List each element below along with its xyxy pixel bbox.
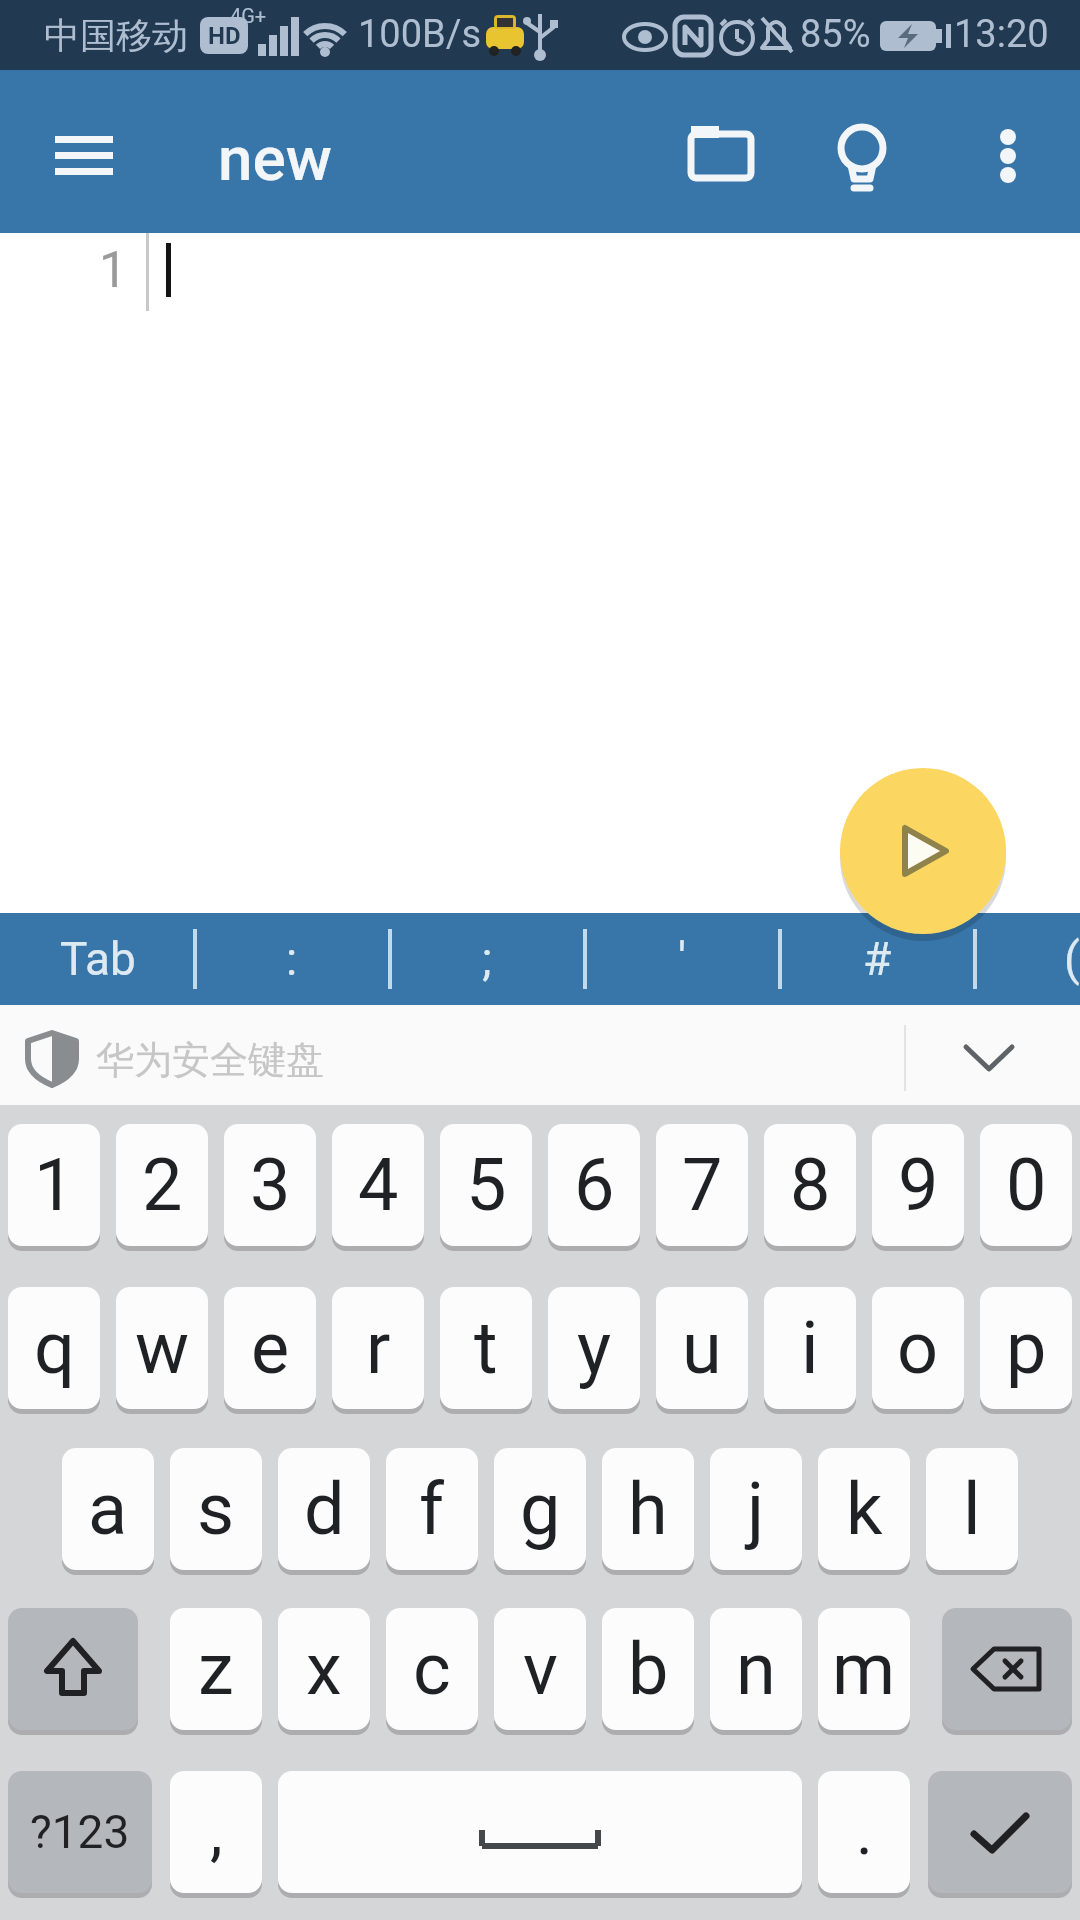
staticText: a (88, 1467, 128, 1551)
staticText: 华为安全键盘 (96, 1036, 324, 1084)
button[interactable]: 4 (332, 1124, 424, 1246)
button[interactable]: c (386, 1608, 478, 1730)
button[interactable]: x (278, 1608, 370, 1730)
button[interactable] (972, 116, 1044, 192)
button[interactable]: z (170, 1608, 262, 1730)
staticText: ' (678, 932, 687, 986)
button[interactable]: p (980, 1287, 1072, 1409)
staticText: ; (482, 932, 492, 986)
button[interactable]: t (440, 1287, 532, 1409)
staticText: c (413, 1627, 451, 1711)
staticText: f (419, 1467, 445, 1551)
button[interactable]: d (278, 1448, 370, 1570)
button[interactable] (43, 124, 125, 186)
button[interactable]: r (332, 1287, 424, 1409)
button[interactable]: w (116, 1287, 208, 1409)
button[interactable]: v (494, 1608, 586, 1730)
staticText: : (286, 932, 298, 986)
button[interactable]: a (62, 1448, 154, 1570)
button[interactable]: y (548, 1287, 640, 1409)
staticText: q (34, 1306, 75, 1390)
button[interactable]: u (656, 1287, 748, 1409)
button[interactable] (8, 1608, 138, 1730)
staticText: 1 (34, 1143, 75, 1227)
staticText: n (736, 1627, 776, 1711)
button[interactable]: ; (389, 913, 585, 1005)
button[interactable]: ( (974, 913, 1080, 1005)
button[interactable]: 3 (224, 1124, 316, 1246)
staticText: 9 (898, 1143, 939, 1227)
button[interactable]: 7 (656, 1124, 748, 1246)
button[interactable]: # (779, 913, 975, 1005)
button[interactable] (824, 116, 900, 192)
staticText: h (628, 1467, 668, 1551)
staticText: 1 (98, 241, 128, 300)
button[interactable]: q (8, 1287, 100, 1409)
button[interactable] (928, 1771, 1072, 1893)
button[interactable]: 5 (440, 1124, 532, 1246)
staticText: v (523, 1627, 558, 1711)
button[interactable]: Tab (0, 913, 196, 1005)
button[interactable]: , (170, 1771, 262, 1893)
staticText: y (577, 1306, 612, 1390)
staticText: ( (1064, 932, 1080, 986)
button[interactable]: g (494, 1448, 586, 1570)
staticText: HD (208, 22, 241, 50)
button[interactable]: f (386, 1448, 478, 1570)
staticText: l (963, 1467, 981, 1551)
button[interactable]: 6 (548, 1124, 640, 1246)
staticText: 6 (574, 1143, 615, 1227)
button[interactable]: 0 (980, 1124, 1072, 1246)
button[interactable]: n (710, 1608, 802, 1730)
staticText: r (366, 1306, 391, 1390)
button[interactable] (678, 118, 762, 190)
staticText: , (210, 1795, 223, 1870)
button[interactable] (840, 768, 1006, 934)
staticText: 0 (1006, 1143, 1047, 1227)
button[interactable]: ' (584, 913, 780, 1005)
button[interactable]: 1 (8, 1124, 100, 1246)
button[interactable] (20, 1023, 340, 1093)
button[interactable]: e (224, 1287, 316, 1409)
button[interactable] (918, 1013, 1068, 1101)
staticText: o (897, 1306, 939, 1390)
staticText: 85% (800, 12, 871, 57)
staticText: 5 (466, 1143, 507, 1227)
staticText: s (197, 1467, 235, 1551)
button[interactable] (942, 1608, 1072, 1730)
staticText: # (863, 932, 892, 986)
button[interactable]: s (170, 1448, 262, 1570)
button[interactable]: o (872, 1287, 964, 1409)
button[interactable]: 8 (764, 1124, 856, 1246)
staticText: 13:20 (954, 12, 1049, 57)
staticText: x (306, 1627, 342, 1711)
staticText: 2 (142, 1143, 183, 1227)
staticText: j (747, 1467, 765, 1551)
button[interactable]: h (602, 1448, 694, 1570)
staticText: 中国移动 (44, 13, 188, 58)
button[interactable]: i (764, 1287, 856, 1409)
staticText: 3 (250, 1143, 291, 1227)
staticText: t (474, 1306, 498, 1390)
staticText: p (1006, 1306, 1047, 1390)
staticText: 100B/s (358, 12, 482, 57)
staticText: new (218, 122, 332, 195)
button[interactable]: . (818, 1771, 910, 1893)
staticText: m (832, 1627, 896, 1711)
button[interactable]: ?123 (8, 1771, 152, 1893)
button[interactable]: l (926, 1448, 1018, 1570)
staticText: e (251, 1306, 290, 1390)
button[interactable] (278, 1771, 802, 1893)
staticText: Tab (60, 932, 136, 986)
button[interactable]: 9 (872, 1124, 964, 1246)
staticText: ?123 (30, 1805, 130, 1859)
staticText: 7 (682, 1143, 723, 1227)
button[interactable]: k (818, 1448, 910, 1570)
staticText: 4G+ (230, 4, 267, 27)
button[interactable]: m (818, 1608, 910, 1730)
staticText: u (682, 1306, 722, 1390)
button[interactable]: j (710, 1448, 802, 1570)
button[interactable]: : (194, 913, 390, 1005)
button[interactable]: b (602, 1608, 694, 1730)
button[interactable]: 2 (116, 1124, 208, 1246)
